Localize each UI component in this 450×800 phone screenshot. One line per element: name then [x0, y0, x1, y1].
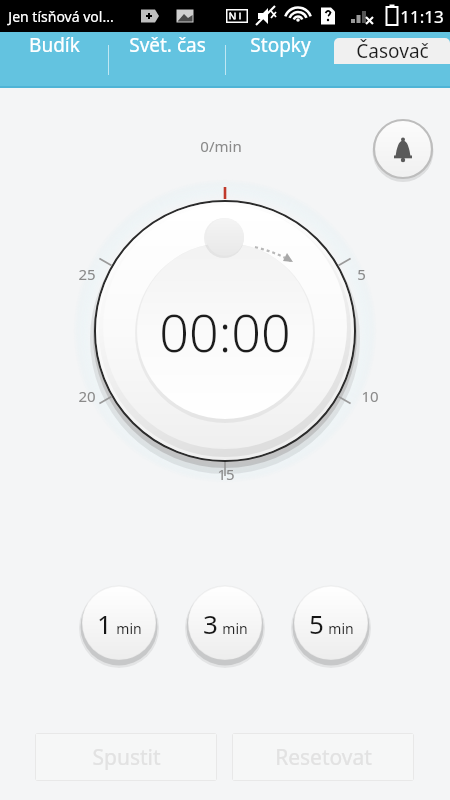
staticText: Resetovat	[275, 743, 372, 772]
staticText: 5	[357, 264, 366, 284]
button[interactable]: 1	[78, 582, 160, 664]
staticText: Spustit	[92, 743, 161, 772]
staticText: 20	[78, 386, 96, 406]
button[interactable]: Budík	[0, 32, 108, 58]
staticText: min	[222, 619, 248, 638]
staticText: Budík	[29, 32, 80, 58]
staticText: Jen tísňová vol...	[8, 7, 114, 26]
staticText: 00:00	[159, 296, 291, 367]
staticText: 1	[97, 606, 112, 641]
staticText: 10	[361, 386, 379, 406]
staticText: Svět. čas	[129, 32, 206, 58]
button[interactable]: Časovač	[334, 38, 450, 64]
button[interactable]: 00:00	[95, 201, 355, 461]
button[interactable]: 3	[184, 582, 266, 664]
staticText: Časovač	[356, 38, 429, 64]
staticText: min	[116, 619, 142, 638]
staticText: Stopky	[250, 32, 311, 58]
button[interactable]: Alarm sound	[372, 118, 434, 180]
button[interactable]: Resetovat	[232, 733, 414, 781]
staticText: 5	[309, 606, 324, 641]
staticText: 15	[217, 464, 235, 484]
button[interactable]: Stopky	[226, 32, 334, 58]
button[interactable]: Svět. čas	[109, 32, 225, 58]
staticText: 11:13	[400, 5, 444, 28]
button[interactable]: 5	[290, 582, 372, 664]
staticText: 0/min	[200, 136, 242, 156]
button[interactable]: Spustit	[35, 733, 217, 781]
staticText: 25	[78, 264, 96, 284]
staticText: 3	[203, 606, 218, 641]
staticText: min	[328, 619, 354, 638]
